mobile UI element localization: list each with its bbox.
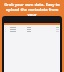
staticText: upload the metadata from your xyxy=(3,7,61,17)
button[interactable] xyxy=(4,28,60,30)
button[interactable] xyxy=(4,30,60,32)
staticText: Grab your own data. Easy to xyxy=(4,2,60,7)
button[interactable] xyxy=(4,26,60,28)
